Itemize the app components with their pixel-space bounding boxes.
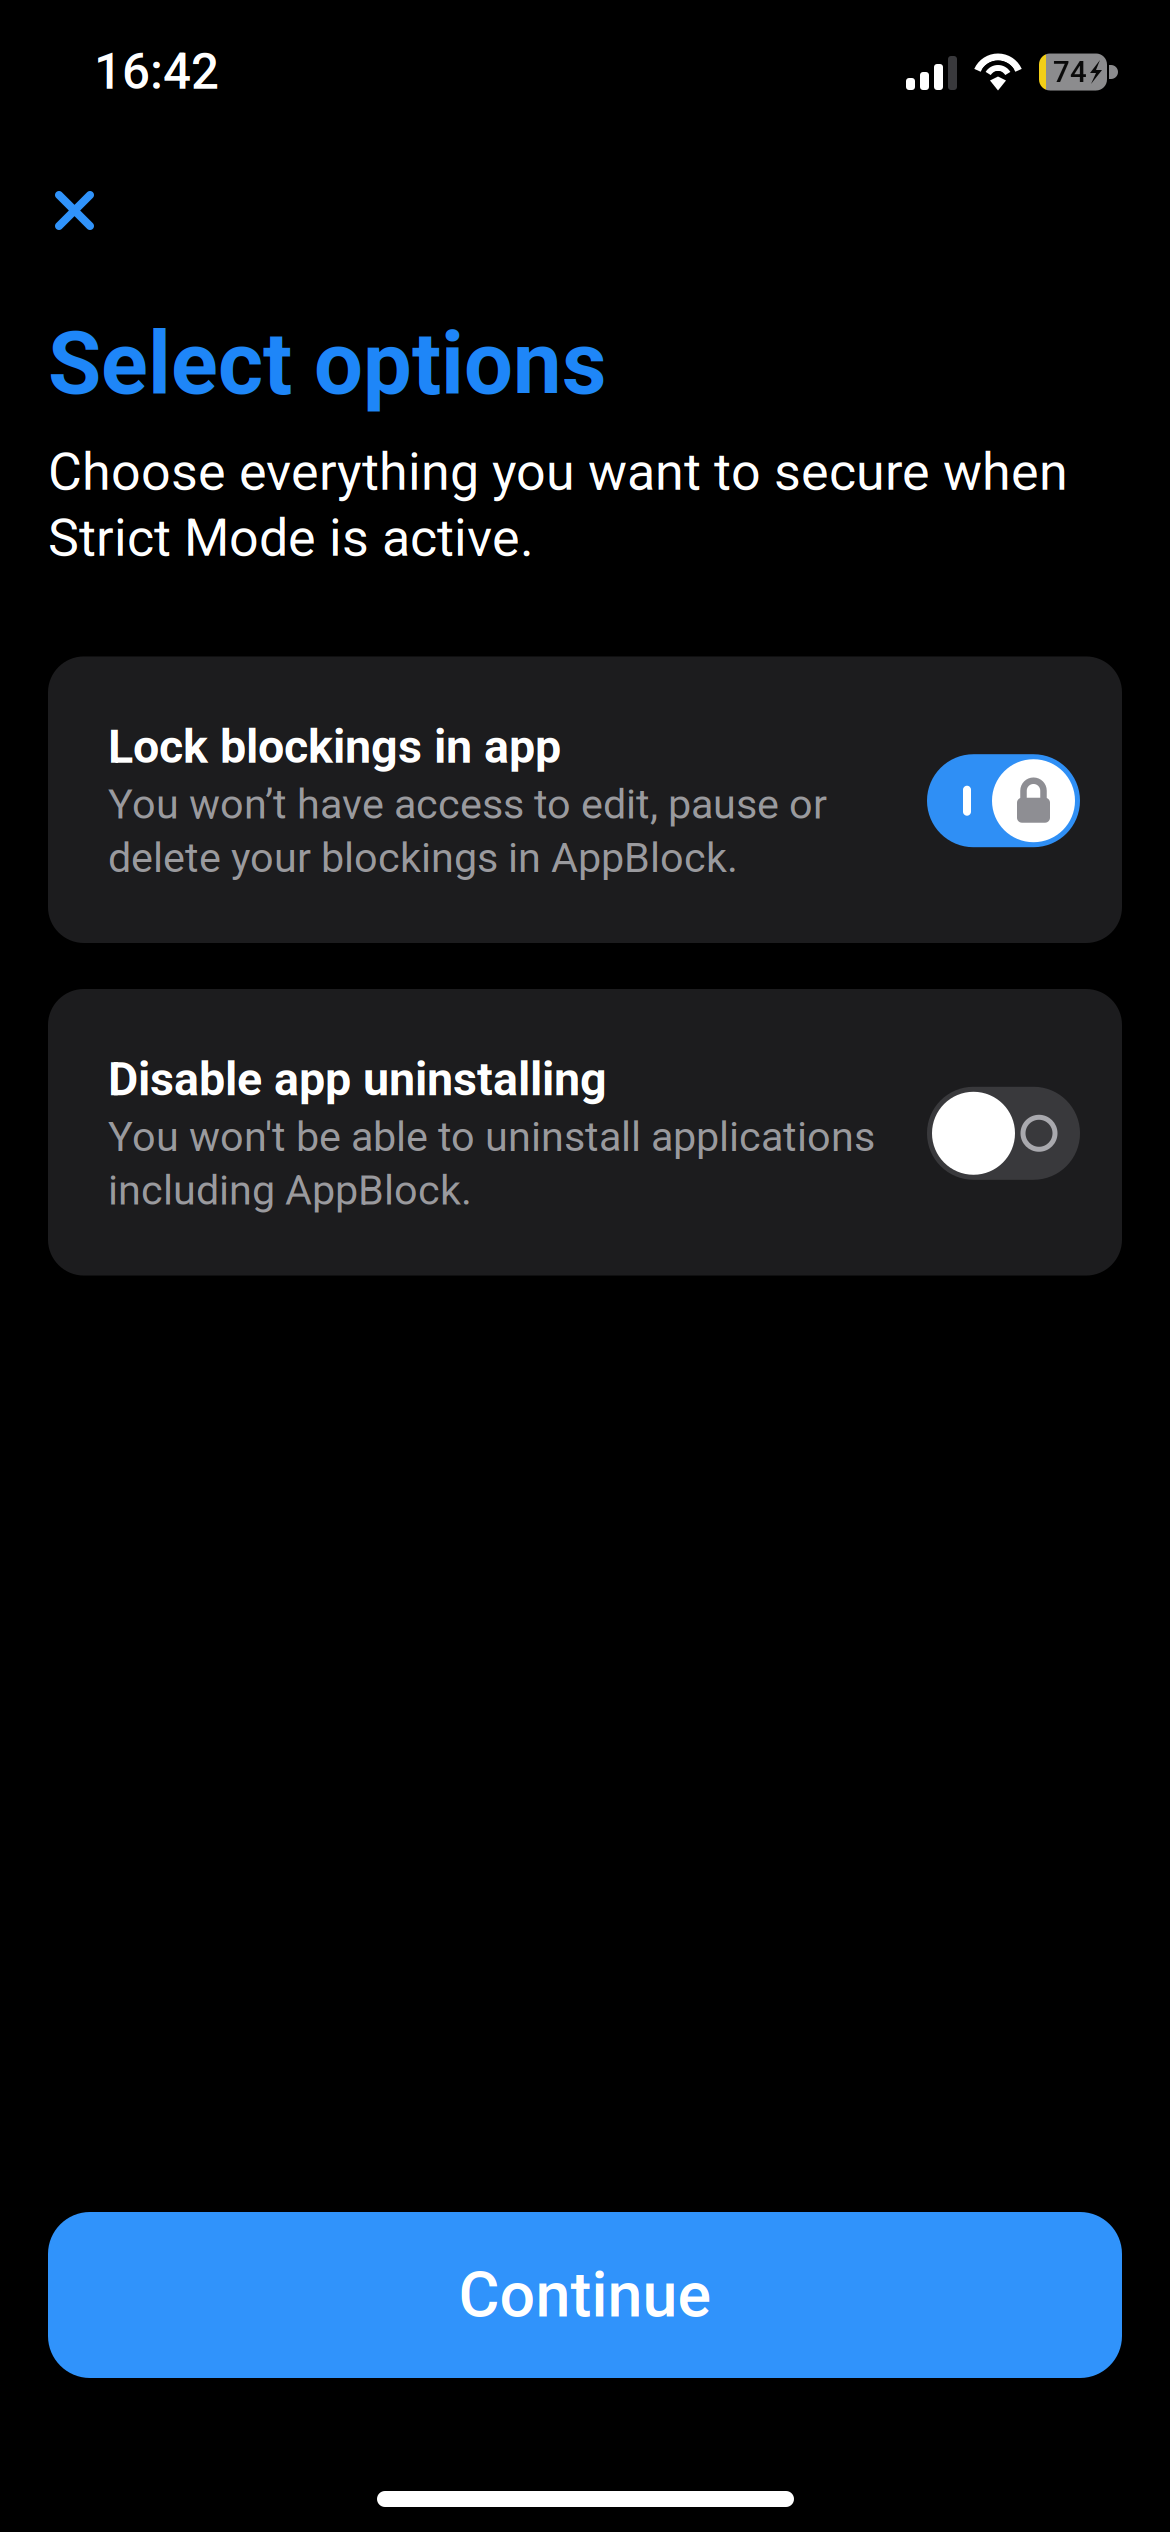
staticText: delete your blockings in AppBlock. bbox=[108, 834, 738, 882]
button[interactable]: Disable app uninstalling bbox=[48, 989, 1122, 1276]
staticText: You won’t have access to edit, pause or bbox=[108, 780, 827, 828]
staticText: 74 bbox=[1053, 55, 1087, 89]
staticText: Continue bbox=[458, 2258, 711, 2332]
staticText: You won't be able to uninstall applicati… bbox=[108, 1113, 875, 1161]
staticText: Lock blockings in app bbox=[108, 719, 561, 774]
staticText: 16:42 bbox=[94, 43, 219, 101]
staticText: Disable app uninstalling bbox=[108, 1052, 607, 1107]
staticText: including AppBlock. bbox=[108, 1166, 472, 1214]
button[interactable]: Close bbox=[0, 158, 135, 263]
button[interactable]: Lock blockings in app bbox=[48, 656, 1122, 943]
staticText: Strict Mode is active. bbox=[48, 507, 534, 568]
staticText: Select options bbox=[48, 313, 607, 415]
button[interactable]: Continue bbox=[48, 2212, 1122, 2378]
staticText: Choose everything you want to secure whe… bbox=[48, 442, 1068, 502]
